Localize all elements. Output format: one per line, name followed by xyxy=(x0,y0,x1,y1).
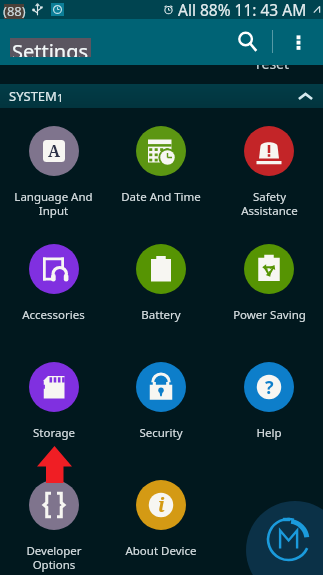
button[interactable]: Safety Assistance xyxy=(215,108,323,226)
button[interactable]: Settings xyxy=(10,38,91,57)
button[interactable]: A xyxy=(0,108,107,226)
button[interactable]: More options xyxy=(279,22,317,60)
button[interactable]: i xyxy=(107,462,215,575)
staticText: (88) xyxy=(3,2,26,20)
staticText: SYSTEM xyxy=(9,87,57,105)
staticText: A xyxy=(48,140,61,162)
button[interactable]: Storage xyxy=(0,344,107,462)
staticText: All 88% 11: 43 AM xyxy=(178,0,307,18)
staticText: Help xyxy=(256,425,282,441)
staticText: Settings xyxy=(12,38,89,57)
staticText: 1 xyxy=(57,90,64,105)
staticText: ? xyxy=(265,375,274,400)
button[interactable]: ? xyxy=(215,344,323,462)
staticText: About Device xyxy=(125,543,197,559)
button[interactable]: Date And Time xyxy=(107,108,215,226)
button[interactable]: Developer Options xyxy=(0,462,107,575)
other: Logo xyxy=(0,0,323,575)
button[interactable]: Battery xyxy=(107,226,215,344)
staticText: Language And Input xyxy=(14,189,93,218)
staticText: reset xyxy=(256,65,290,73)
staticText: Storage xyxy=(33,425,75,441)
button[interactable]: Search xyxy=(227,21,267,61)
button[interactable]: SYSTEM xyxy=(0,84,323,108)
staticText: Developer Options xyxy=(26,543,82,572)
staticText: Safety Assistance xyxy=(241,189,298,218)
staticText: Date And Time xyxy=(121,189,201,205)
button[interactable]: Security xyxy=(107,344,215,462)
button[interactable]: Power Saving xyxy=(215,226,323,344)
staticText: Battery xyxy=(141,307,181,323)
staticText: Accessories xyxy=(22,307,85,323)
button[interactable]: Accessories xyxy=(0,226,107,344)
staticText: Power Saving xyxy=(233,307,306,323)
staticText: Security xyxy=(139,425,183,441)
staticText: i xyxy=(158,492,165,518)
